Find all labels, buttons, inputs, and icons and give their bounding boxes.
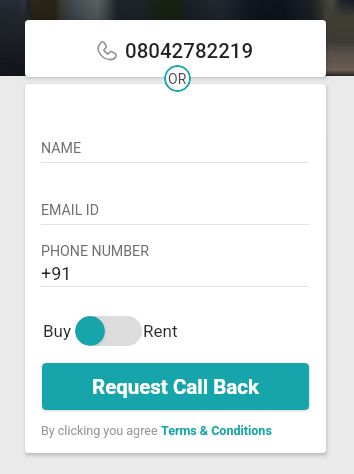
button[interactable]: Request Call Back <box>42 363 309 410</box>
staticText: Rent <box>143 321 178 341</box>
button[interactable]: Terms & Conditions <box>161 423 272 438</box>
button[interactable]: 08042782219 <box>25 20 326 77</box>
staticText: +91 <box>41 263 72 284</box>
staticText: Buy <box>43 321 72 341</box>
staticText: PHONE NUMBER <box>41 243 149 260</box>
staticText: EMAIL ID <box>41 202 100 219</box>
button[interactable]: Buy or Rent toggle <box>75 316 142 346</box>
staticText: Request Call Back <box>92 375 259 399</box>
staticText: OR <box>168 71 187 87</box>
staticText: 08042782219 <box>125 39 254 63</box>
staticText: NAME <box>41 140 81 157</box>
staticText: By clicking you agree <box>41 423 161 438</box>
